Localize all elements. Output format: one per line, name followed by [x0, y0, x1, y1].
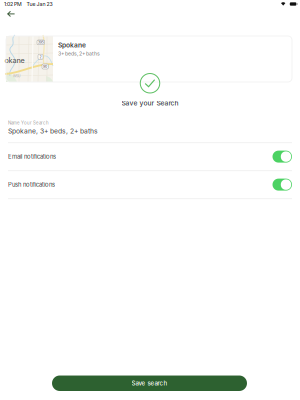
- staticText: Email notifications: [8, 153, 56, 160]
- staticText: Push notifications: [8, 181, 55, 188]
- staticText: Tue Jan 23: [26, 1, 52, 7]
- staticText: 395: [38, 40, 44, 44]
- staticText: 90: [43, 64, 47, 69]
- button[interactable]: Email notifications: [0, 143, 300, 170]
- staticText: Save search: [131, 379, 167, 387]
- staticText: Name Your Search: [8, 120, 49, 125]
- staticText: Save your Search: [121, 99, 178, 107]
- staticText: 3+ beds, 2+ baths: [58, 51, 100, 57]
- button[interactable]: Push notifications: [0, 171, 300, 198]
- staticText: Spokane: [58, 41, 86, 49]
- staticText: 2: [39, 55, 41, 59]
- button[interactable]: Save search: [52, 375, 247, 391]
- staticText: Spokane, 3+ beds, 2+ baths: [8, 127, 98, 135]
- staticText: 1:02 PM: [4, 1, 22, 7]
- staticText: WSU: [13, 74, 20, 78]
- button[interactable]: Back: [3, 8, 19, 20]
- staticText: okane: [4, 56, 24, 65]
